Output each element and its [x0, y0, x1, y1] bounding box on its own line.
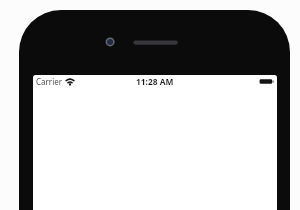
staticText: Carrier	[36, 76, 63, 87]
staticText: 11:28 AM	[136, 76, 174, 87]
other: Wi-Fi signal	[64, 78, 75, 86]
other: Battery full	[259, 78, 275, 85]
